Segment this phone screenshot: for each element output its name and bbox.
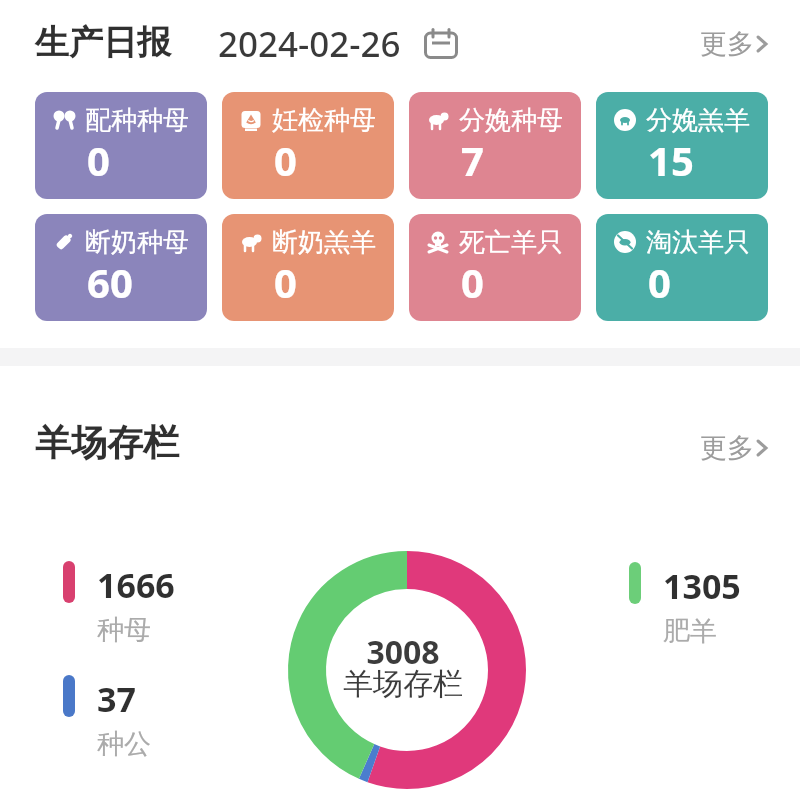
staticText: 0 [274, 255, 297, 309]
staticText: 37 [97, 676, 136, 722]
staticText: 7 [461, 133, 484, 187]
button[interactable]: 妊检种母 [222, 92, 394, 199]
staticText: 0 [274, 133, 297, 187]
staticText: 1666 [97, 562, 175, 608]
staticText: 分娩羔羊 [646, 104, 750, 137]
staticText: 断奶种母 [85, 226, 189, 259]
staticText: 生产日报 [35, 21, 171, 64]
staticText: 配种种母 [85, 104, 189, 137]
button[interactable]: 配种种母 [35, 92, 207, 199]
staticText: 淘汰羊只 [646, 226, 750, 259]
staticText: 死亡羊只 [459, 226, 563, 259]
button[interactable]: 更多 [700, 431, 772, 465]
button[interactable]: 分娩种母 [409, 92, 581, 199]
staticText: 2024-02-26 [218, 20, 401, 68]
staticText: 更多 [700, 27, 754, 61]
button[interactable]: 断奶种母 [35, 214, 207, 321]
button[interactable]: 分娩羔羊 [596, 92, 768, 199]
button[interactable]: 断奶羔羊 [222, 214, 394, 321]
button[interactable]: 更多 [700, 27, 772, 61]
staticText: 0 [87, 133, 110, 187]
staticText: 肥羊 [663, 614, 717, 648]
staticText: 0 [461, 255, 484, 309]
staticText: 60 [87, 255, 133, 309]
staticText: 断奶羔羊 [272, 226, 376, 259]
staticText: 更多 [700, 431, 754, 465]
staticText: 种公 [97, 727, 151, 761]
staticText: 羊场存栏 [303, 665, 503, 703]
staticText: 羊场存栏 [35, 420, 179, 465]
staticText: 分娩种母 [459, 104, 563, 137]
staticText: 种母 [97, 613, 151, 647]
button[interactable]: 死亡羊只 [409, 214, 581, 321]
button[interactable]: 2024-02-26 [218, 20, 458, 68]
staticText: 3008 [303, 630, 503, 674]
staticText: 0 [648, 255, 671, 309]
staticText: 妊检种母 [272, 104, 376, 137]
staticText: 15 [648, 133, 694, 187]
button[interactable]: 淘汰羊只 [596, 214, 768, 321]
staticText: 1305 [663, 563, 741, 609]
